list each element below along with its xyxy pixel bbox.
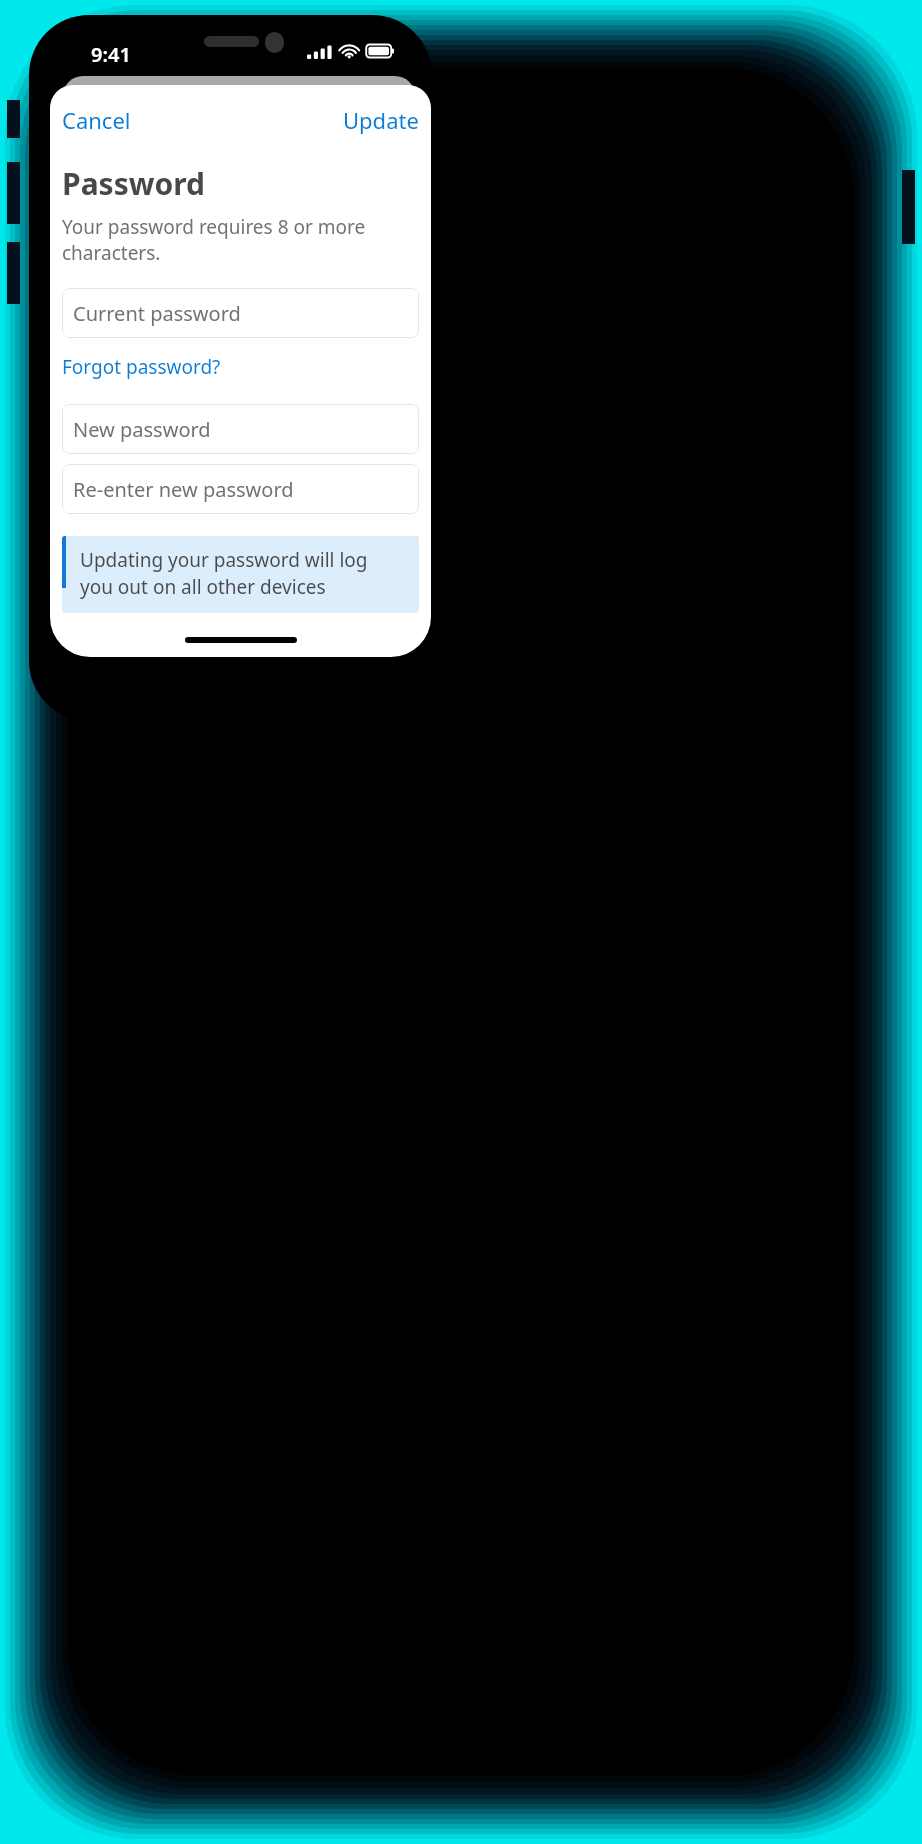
staticText: Forgot password? xyxy=(62,354,221,380)
staticText: Password xyxy=(62,163,205,204)
staticText: Current password xyxy=(73,300,241,327)
button[interactable]: Re-enter new password xyxy=(62,464,419,514)
button[interactable]: Update xyxy=(331,99,431,141)
staticText: Updating your password will log you out … xyxy=(80,547,405,600)
staticText: Re-enter new password xyxy=(73,476,294,503)
button[interactable]: Current password xyxy=(62,288,419,338)
button[interactable]: New password xyxy=(62,404,419,454)
button[interactable]: Forgot password? xyxy=(50,352,233,382)
staticText: Cancel xyxy=(62,105,131,135)
staticText: New password xyxy=(73,416,211,443)
button[interactable]: Updating your password will log you out … xyxy=(62,536,419,613)
staticText: 9:41 xyxy=(91,41,131,68)
staticText: Your password requires 8 or more charact… xyxy=(62,214,403,266)
staticText: Update xyxy=(343,105,419,135)
button[interactable]: Cancel xyxy=(50,99,143,141)
